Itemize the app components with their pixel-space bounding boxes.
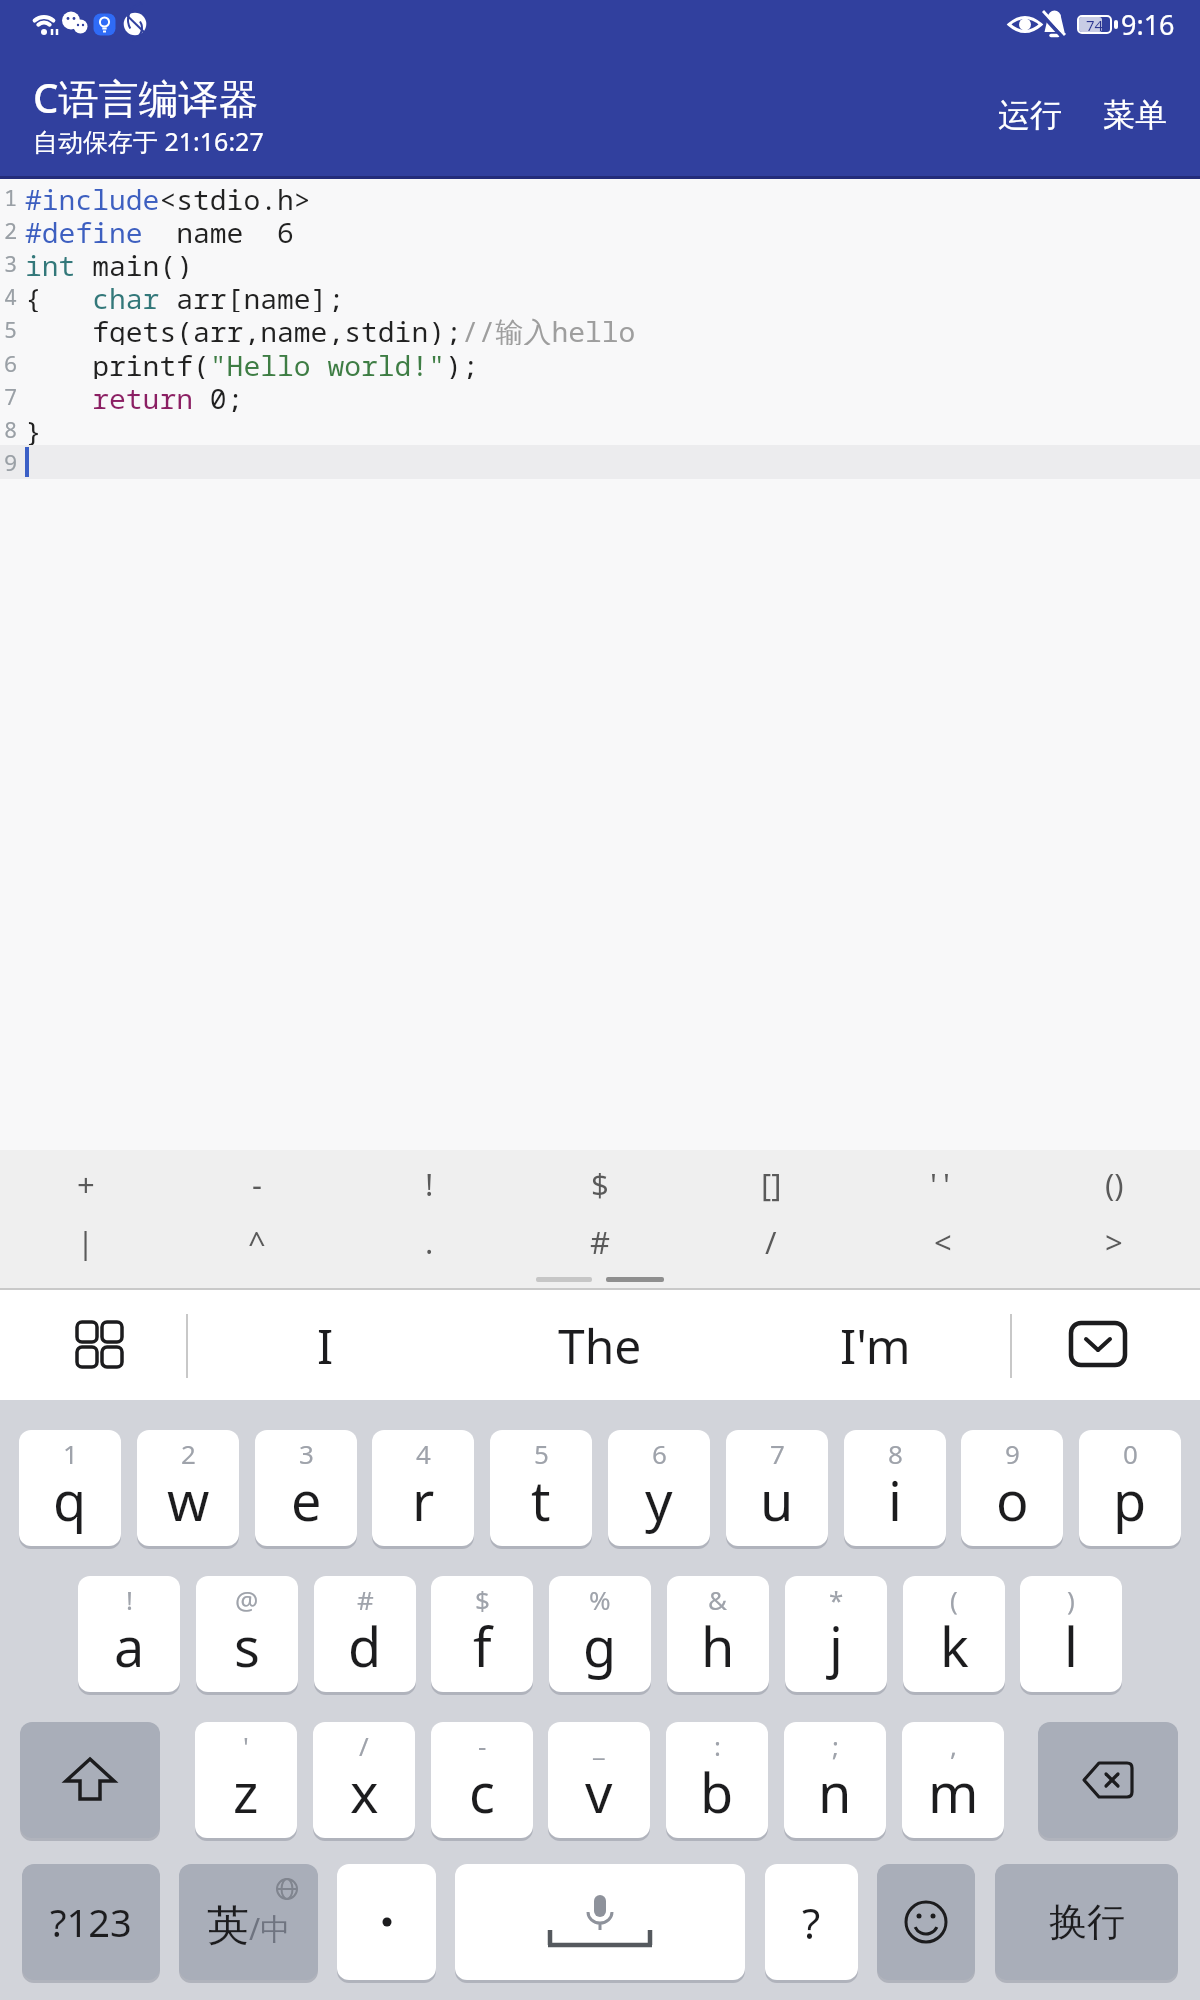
button[interactable]: > (1054, 1216, 1174, 1268)
button[interactable]: 9 (961, 1430, 1063, 1546)
staticText: ? (802, 1894, 821, 1951)
staticText: 菜单 (1103, 95, 1167, 135)
staticText: r (412, 1463, 435, 1537)
staticText: 6 (652, 1436, 667, 1471)
button[interactable]: I (215, 1290, 435, 1400)
staticText: I (317, 1313, 334, 1378)
button[interactable]: ) (1020, 1576, 1122, 1692)
staticText: ( (950, 1582, 958, 1617)
button[interactable]: 8 (844, 1430, 946, 1546)
button[interactable]: : (666, 1722, 768, 1838)
button[interactable]: $ (540, 1158, 660, 1210)
button[interactable]: @ (196, 1576, 298, 1692)
staticText: 9 (4, 447, 18, 477)
button[interactable]: | (26, 1216, 146, 1268)
button[interactable] (1038, 1722, 1178, 1838)
button[interactable]: , (902, 1722, 1004, 1838)
staticText: 3 (299, 1436, 314, 1471)
button[interactable]: '' (883, 1158, 1003, 1210)
staticText: 9 (1005, 1436, 1020, 1471)
button[interactable]: - (431, 1722, 533, 1838)
button[interactable]: 7 (726, 1430, 828, 1546)
staticText: 自动保存于 21:16:27 (33, 124, 264, 158)
button[interactable]: & (667, 1576, 769, 1692)
button[interactable]: $ (431, 1576, 533, 1692)
button[interactable] (20, 1722, 160, 1838)
button[interactable]: 0 (1079, 1430, 1181, 1546)
button[interactable]: 换行 (995, 1864, 1178, 1980)
staticText: # (357, 1582, 374, 1617)
button[interactable] (40, 1290, 160, 1400)
button[interactable]: ; (784, 1722, 886, 1838)
staticText: ; (832, 1728, 839, 1763)
button[interactable]: . (369, 1216, 489, 1268)
staticText: fgets(arr,name,stdin);//输入hello (25, 312, 636, 345)
button[interactable]: [] (711, 1158, 831, 1210)
staticText: g (583, 1609, 617, 1683)
staticText: ! (126, 1582, 133, 1617)
button[interactable]: 2 (137, 1430, 239, 1546)
staticText: s (234, 1609, 260, 1683)
staticText: @ (235, 1582, 259, 1617)
staticText: # (590, 1221, 611, 1263)
button[interactable]: / (313, 1722, 415, 1838)
staticText: . (425, 1221, 434, 1263)
button[interactable]: I'm (765, 1290, 985, 1400)
button[interactable]: ' (195, 1722, 297, 1838)
staticText: , (950, 1728, 957, 1763)
button[interactable]: ( (903, 1576, 1005, 1692)
button[interactable]: ? (765, 1864, 858, 1980)
staticText: / (765, 1221, 777, 1263)
staticText: u (760, 1463, 794, 1537)
staticText: return 0; (25, 379, 244, 412)
button[interactable]: # (540, 1216, 660, 1268)
staticText: d (348, 1609, 382, 1683)
button[interactable]: 4 (372, 1430, 474, 1546)
button[interactable] (877, 1864, 975, 1980)
button[interactable]: 3 (255, 1430, 357, 1546)
button[interactable]: The (490, 1290, 710, 1400)
staticText: 运行 (998, 95, 1062, 135)
staticText: 8 (888, 1436, 903, 1471)
button[interactable] (1043, 1290, 1153, 1400)
button[interactable]: 运行 (985, 90, 1075, 140)
staticText: 5 (4, 314, 18, 344)
staticText: n (818, 1755, 852, 1829)
staticText: w (167, 1463, 210, 1537)
staticText: 换行 (1049, 1898, 1125, 1946)
button[interactable]: 5 (490, 1430, 592, 1546)
button[interactable]: _ (548, 1722, 650, 1838)
button[interactable]: 菜单 (1090, 90, 1180, 140)
button[interactable]: - (197, 1158, 317, 1210)
button[interactable]: ! (78, 1576, 180, 1692)
staticText: b (700, 1755, 734, 1829)
button[interactable]: < (883, 1216, 1003, 1268)
button[interactable]: * (785, 1576, 887, 1692)
button[interactable]: # (314, 1576, 416, 1692)
button[interactable]: 6 (608, 1430, 710, 1546)
staticText: 4 (416, 1436, 431, 1471)
staticText: 2 (4, 215, 18, 245)
staticText: ^ (248, 1221, 266, 1263)
staticText: 9:16 (1121, 6, 1175, 43)
staticText: 英/中 (207, 1900, 291, 1953)
button[interactable] (455, 1864, 745, 1980)
staticText: m (928, 1755, 979, 1829)
staticText: 2 (181, 1436, 196, 1471)
staticText: j (829, 1609, 843, 1683)
staticText: + (77, 1163, 95, 1205)
button[interactable]: 英/中 (179, 1864, 318, 1980)
button[interactable]: ?123 (22, 1864, 160, 1980)
button[interactable]: + (26, 1158, 146, 1210)
staticText: 7 (4, 381, 18, 411)
button[interactable]: () (1054, 1158, 1174, 1210)
staticText: % (589, 1582, 611, 1617)
button[interactable]: / (711, 1216, 831, 1268)
button[interactable]: % (549, 1576, 651, 1692)
button[interactable]: ^ (197, 1216, 317, 1268)
button[interactable] (337, 1864, 436, 1980)
staticText: 3 (4, 248, 18, 278)
button[interactable]: ! (369, 1158, 489, 1210)
staticText: 1 (4, 182, 18, 212)
button[interactable]: 1 (19, 1430, 121, 1546)
